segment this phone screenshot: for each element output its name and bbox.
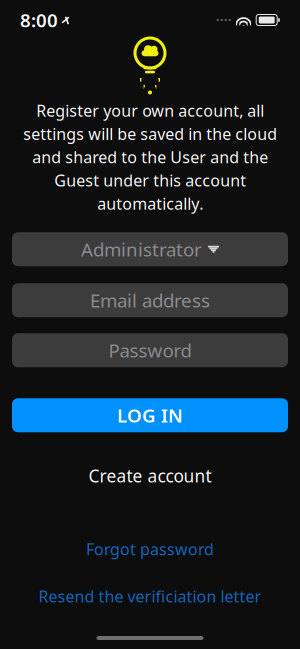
staticText: Register your own account, all settings … (23, 100, 277, 214)
button[interactable]: Create account (74, 458, 225, 493)
staticText: Create account (88, 464, 211, 487)
button[interactable]: Administrator (12, 232, 288, 266)
staticText: Email address (90, 288, 210, 313)
button[interactable]: Password (12, 333, 288, 367)
button[interactable]: Email address (12, 283, 288, 317)
staticText: Password (108, 338, 191, 363)
button[interactable]: Resend the verificiation letter (24, 581, 275, 612)
button[interactable]: LOG IN (12, 398, 288, 432)
staticText: Forgot password (86, 538, 214, 560)
staticText: LOG IN (117, 403, 183, 428)
button[interactable]: Forgot password (72, 533, 228, 565)
staticText: 8:00 (20, 8, 58, 32)
staticText: Administrator (81, 237, 202, 262)
staticText: Resend the verificiation letter (38, 586, 261, 607)
